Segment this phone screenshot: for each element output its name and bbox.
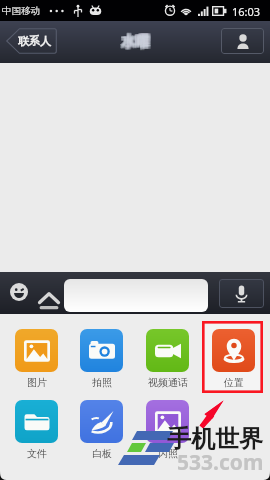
staticText: 视频通话 [148,376,188,389]
staticText: 533.com [177,448,264,477]
staticText: 水曜 [121,34,149,52]
staticText: 水曜 [123,35,151,53]
button[interactable]: 文件 [11,400,62,460]
button[interactable]: Voice message [219,279,264,308]
staticText: 位置 [224,376,244,389]
staticText: 水曜 [120,32,148,50]
staticText: 文件 [27,447,47,460]
staticText: 水曜 [121,32,149,50]
staticText: 水曜 [122,33,150,51]
button[interactable]: 联系人 [6,28,57,54]
staticText: 拍照 [92,376,112,389]
staticText: 水曜 [120,33,148,51]
staticText: 水曜 [120,34,148,52]
staticText: 中国移动 [2,5,40,17]
staticText: 手机世界 [167,424,263,454]
button[interactable]: 拍照 [76,329,127,389]
staticText: 水曜 [122,32,150,50]
button[interactable]: 闪照 [142,400,193,460]
button[interactable]: Emoji [6,279,31,304]
staticText: 水曜 [121,32,149,50]
staticText: 水曜 [121,33,149,51]
staticText: 水曜 [120,33,148,51]
staticText: 16:03 [232,4,261,19]
button[interactable]: 图片 [11,329,62,389]
staticText: 水曜 [123,32,151,50]
staticText: 水曜 [123,34,151,52]
staticText: 水曜 [120,35,148,53]
button[interactable]: Contacts [221,28,264,54]
staticText: 白板 [92,447,112,460]
staticText: 水曜 [120,32,148,50]
button[interactable]: 位置 [208,329,259,389]
staticText: 图片 [27,376,47,389]
staticText: 水曜 [122,32,150,50]
staticText: 水曜 [120,35,148,53]
button[interactable]: 视频通话 [142,329,193,389]
button[interactable]: More tools [34,279,62,307]
staticText: 联系人 [18,34,51,48]
staticText: 水曜 [123,32,151,50]
button[interactable] [64,279,208,312]
staticText: 水曜 [122,35,150,53]
staticText: 水曜 [121,35,149,53]
staticText: 水曜 [123,33,151,51]
button[interactable]: 白板 [76,400,127,460]
staticText: 水曜 [120,32,148,50]
staticText: 闪照 [158,447,178,460]
staticText: 水曜 [120,32,148,50]
staticText: 水曜 [122,34,150,52]
staticText: 水曜 [120,34,148,52]
